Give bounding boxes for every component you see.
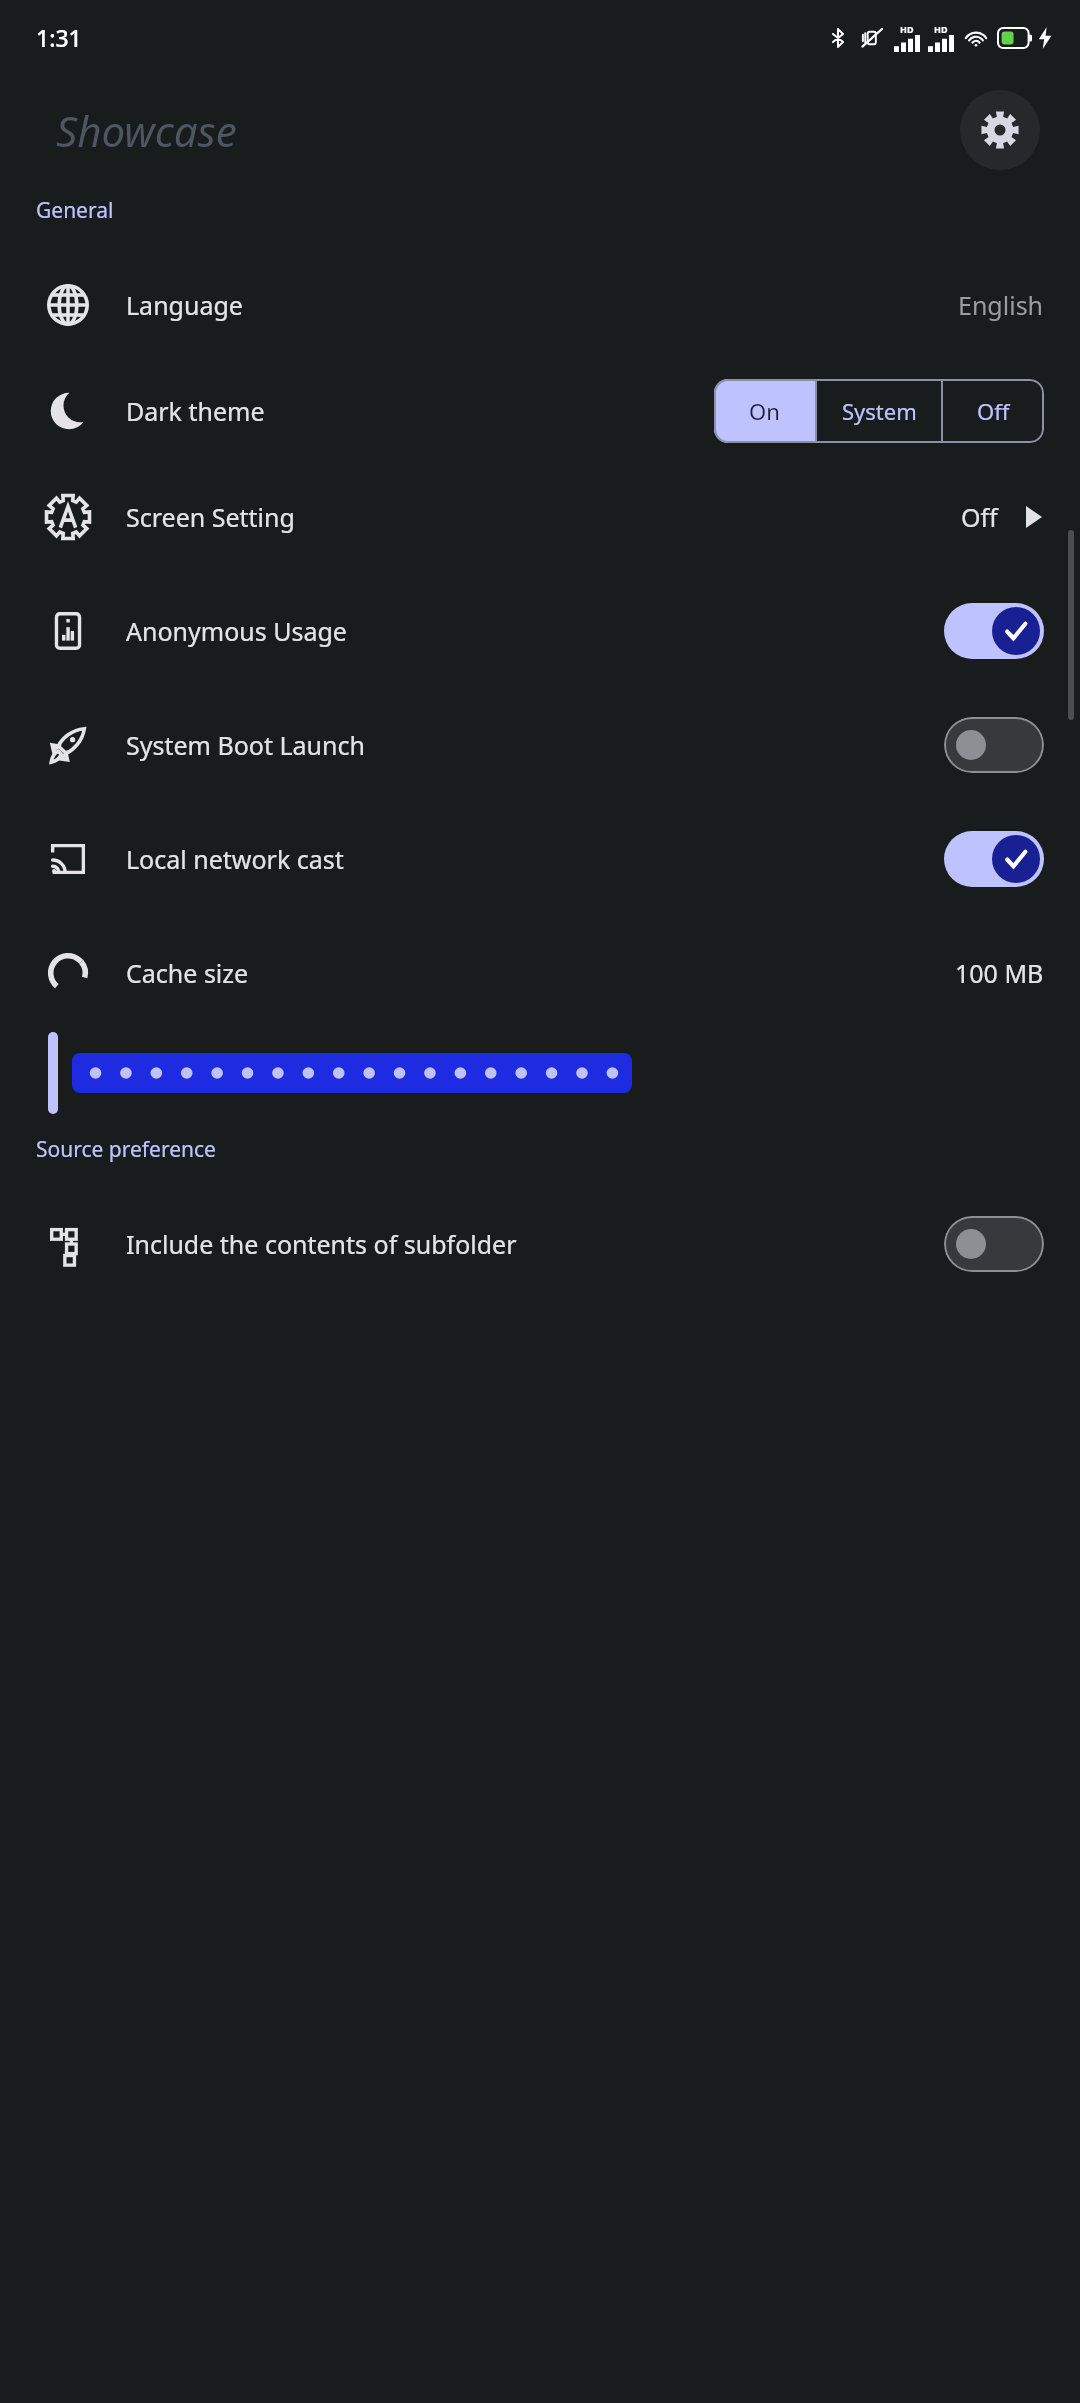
button[interactable]: Cache size	[0, 941, 1080, 1005]
staticText: Cache size	[126, 956, 249, 990]
staticText: 1:31	[36, 22, 82, 53]
staticText: System Boot Launch	[126, 728, 365, 762]
button[interactable]: Include the contents of subfolder	[0, 1212, 1080, 1276]
button[interactable]: On	[714, 379, 815, 443]
staticText: Anonymous Usage	[126, 614, 347, 648]
staticText: Include the contents of subfolder	[126, 1227, 517, 1261]
button[interactable]: System	[817, 379, 941, 443]
button[interactable]: Screen Setting	[0, 485, 1080, 549]
button[interactable]: Toggle off	[944, 717, 1044, 773]
button[interactable]: Toggle on	[944, 603, 1044, 659]
button[interactable]: Local network cast	[0, 827, 1080, 891]
staticText: Off	[961, 500, 998, 534]
staticText: HD	[934, 23, 948, 35]
button[interactable]: Off	[943, 379, 1044, 443]
button[interactable]: Toggle off	[944, 1216, 1044, 1272]
button[interactable]	[0, 1025, 1080, 1121]
button[interactable]: Toggle on	[944, 831, 1044, 887]
staticText: Showcase	[56, 102, 237, 159]
staticText: System	[842, 396, 917, 426]
staticText: Screen Setting	[126, 500, 295, 534]
staticText: On	[749, 396, 780, 426]
button[interactable]: System Boot Launch	[0, 713, 1080, 777]
staticText: Source preference	[36, 1135, 216, 1164]
staticText: Language	[126, 288, 243, 322]
button[interactable]: Settings	[960, 90, 1040, 170]
button[interactable]: Anonymous Usage	[0, 599, 1080, 663]
staticText: General	[36, 196, 114, 225]
staticText: HD	[900, 23, 914, 35]
staticText: Off	[977, 396, 1010, 426]
staticText: Local network cast	[126, 842, 344, 876]
staticText: English	[958, 288, 1044, 322]
staticText: Dark theme	[126, 394, 265, 428]
staticText: 100 MB	[955, 956, 1044, 990]
button[interactable]: Language	[0, 273, 1080, 337]
